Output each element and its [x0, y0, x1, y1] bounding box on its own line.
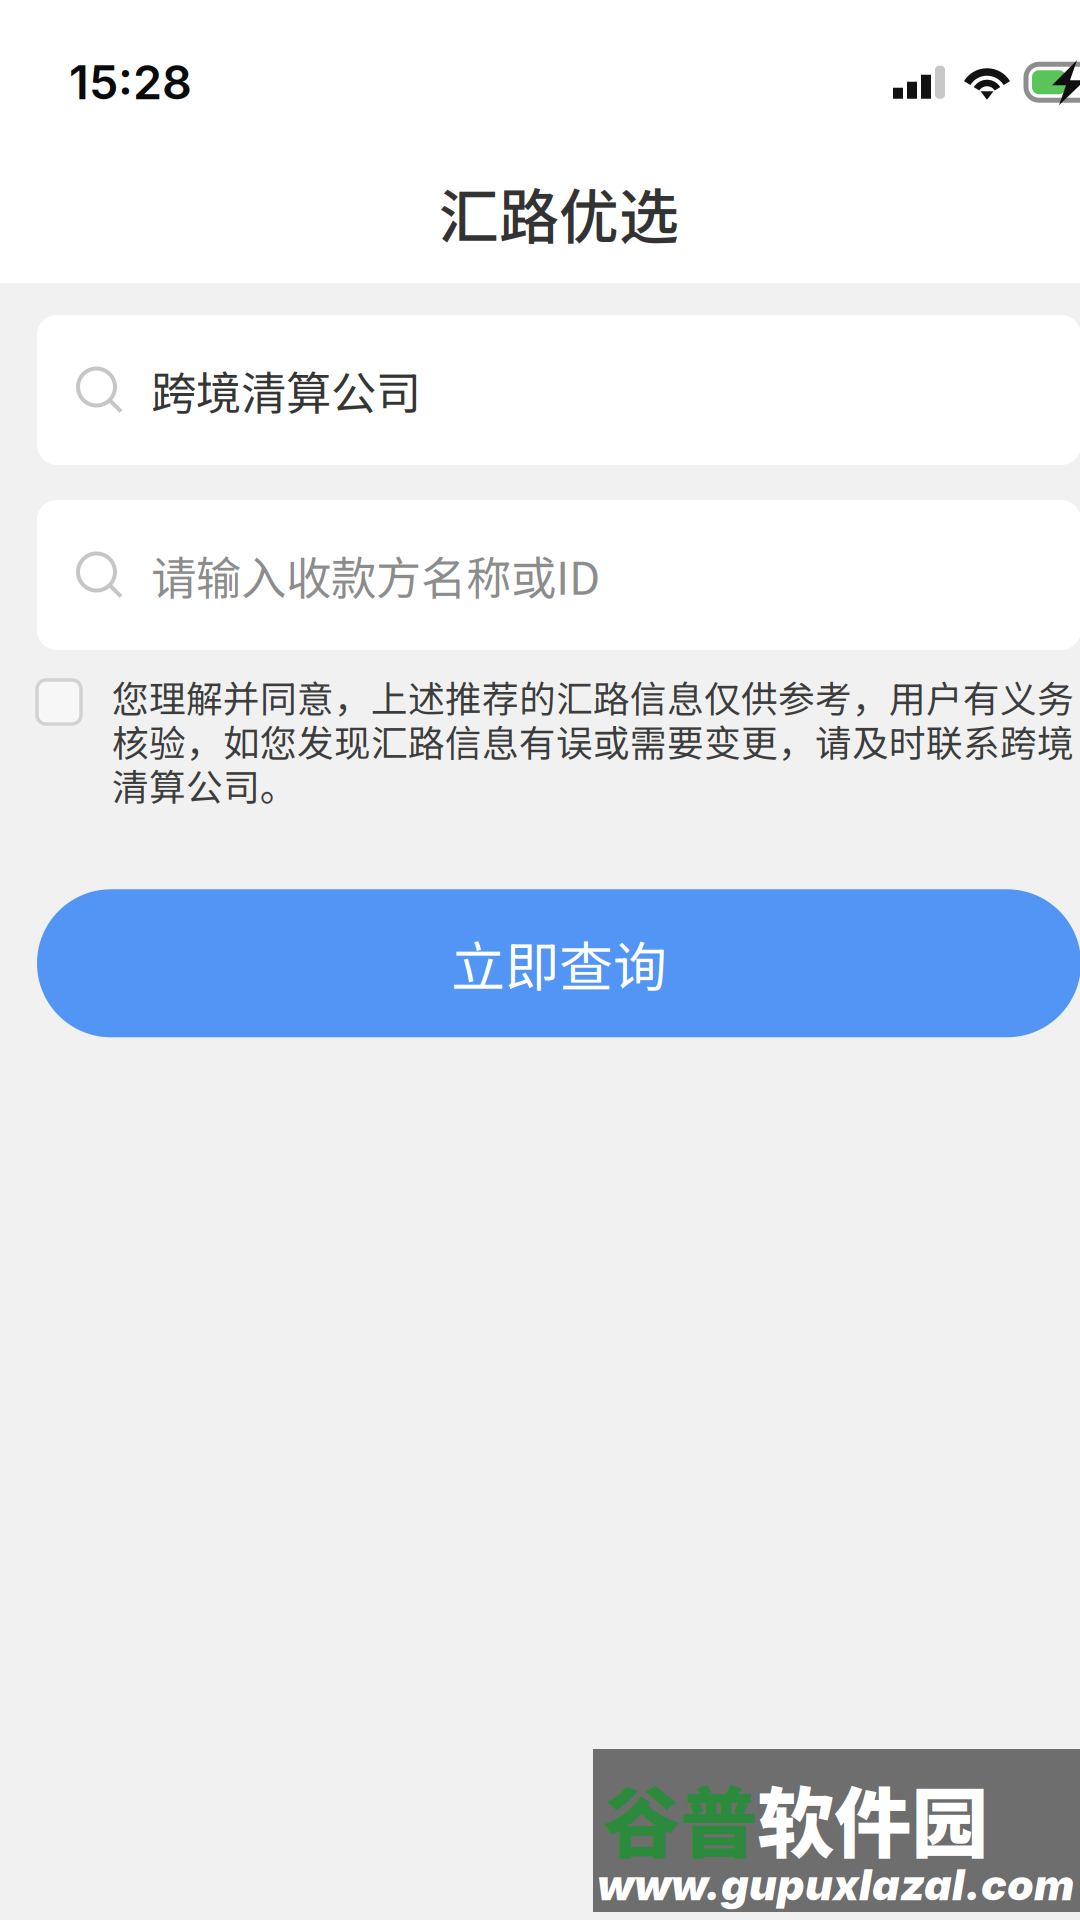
- staticText: 跨境清算公司: [151, 357, 421, 423]
- staticText: 15:28: [69, 54, 192, 110]
- staticText: 汇路优选: [439, 169, 679, 256]
- staticText: 立即查询: [451, 924, 667, 1002]
- staticText: 您理解并同意，上述推荐的汇路信息仅供参考，用户有义务核验，如您发现汇路信息有误或…: [112, 670, 1074, 811]
- staticText: 谷普: [603, 1762, 757, 1874]
- staticText: 软件园: [757, 1762, 988, 1874]
- button[interactable]: 立即查询: [37, 889, 1080, 1037]
- staticText: 请输入收款方名称或ID: [151, 542, 600, 608]
- button[interactable]: 跨境清算公司: [37, 315, 1080, 465]
- button[interactable]: 请输入收款方名称或ID: [37, 500, 1080, 650]
- button[interactable]: 同意条款: [37, 670, 112, 724]
- staticText: www.gupuxlazal.com: [597, 1859, 1074, 1911]
